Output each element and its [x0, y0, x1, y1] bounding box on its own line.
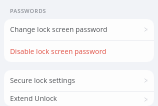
button[interactable]: Secure lock settings: [4, 70, 154, 91]
staticText: Change lock screen password: [10, 25, 143, 35]
staticText: PASSWORDS: [10, 7, 47, 14]
button[interactable]: Extend Unlock: [4, 92, 154, 106]
staticText: Disable lock screen password: [10, 47, 143, 57]
staticText: Extend Unlock: [10, 94, 143, 104]
button[interactable]: Disable lock screen password: [4, 41, 154, 62]
staticText: Secure lock settings: [10, 76, 143, 86]
button[interactable]: Change lock screen password: [4, 19, 154, 40]
